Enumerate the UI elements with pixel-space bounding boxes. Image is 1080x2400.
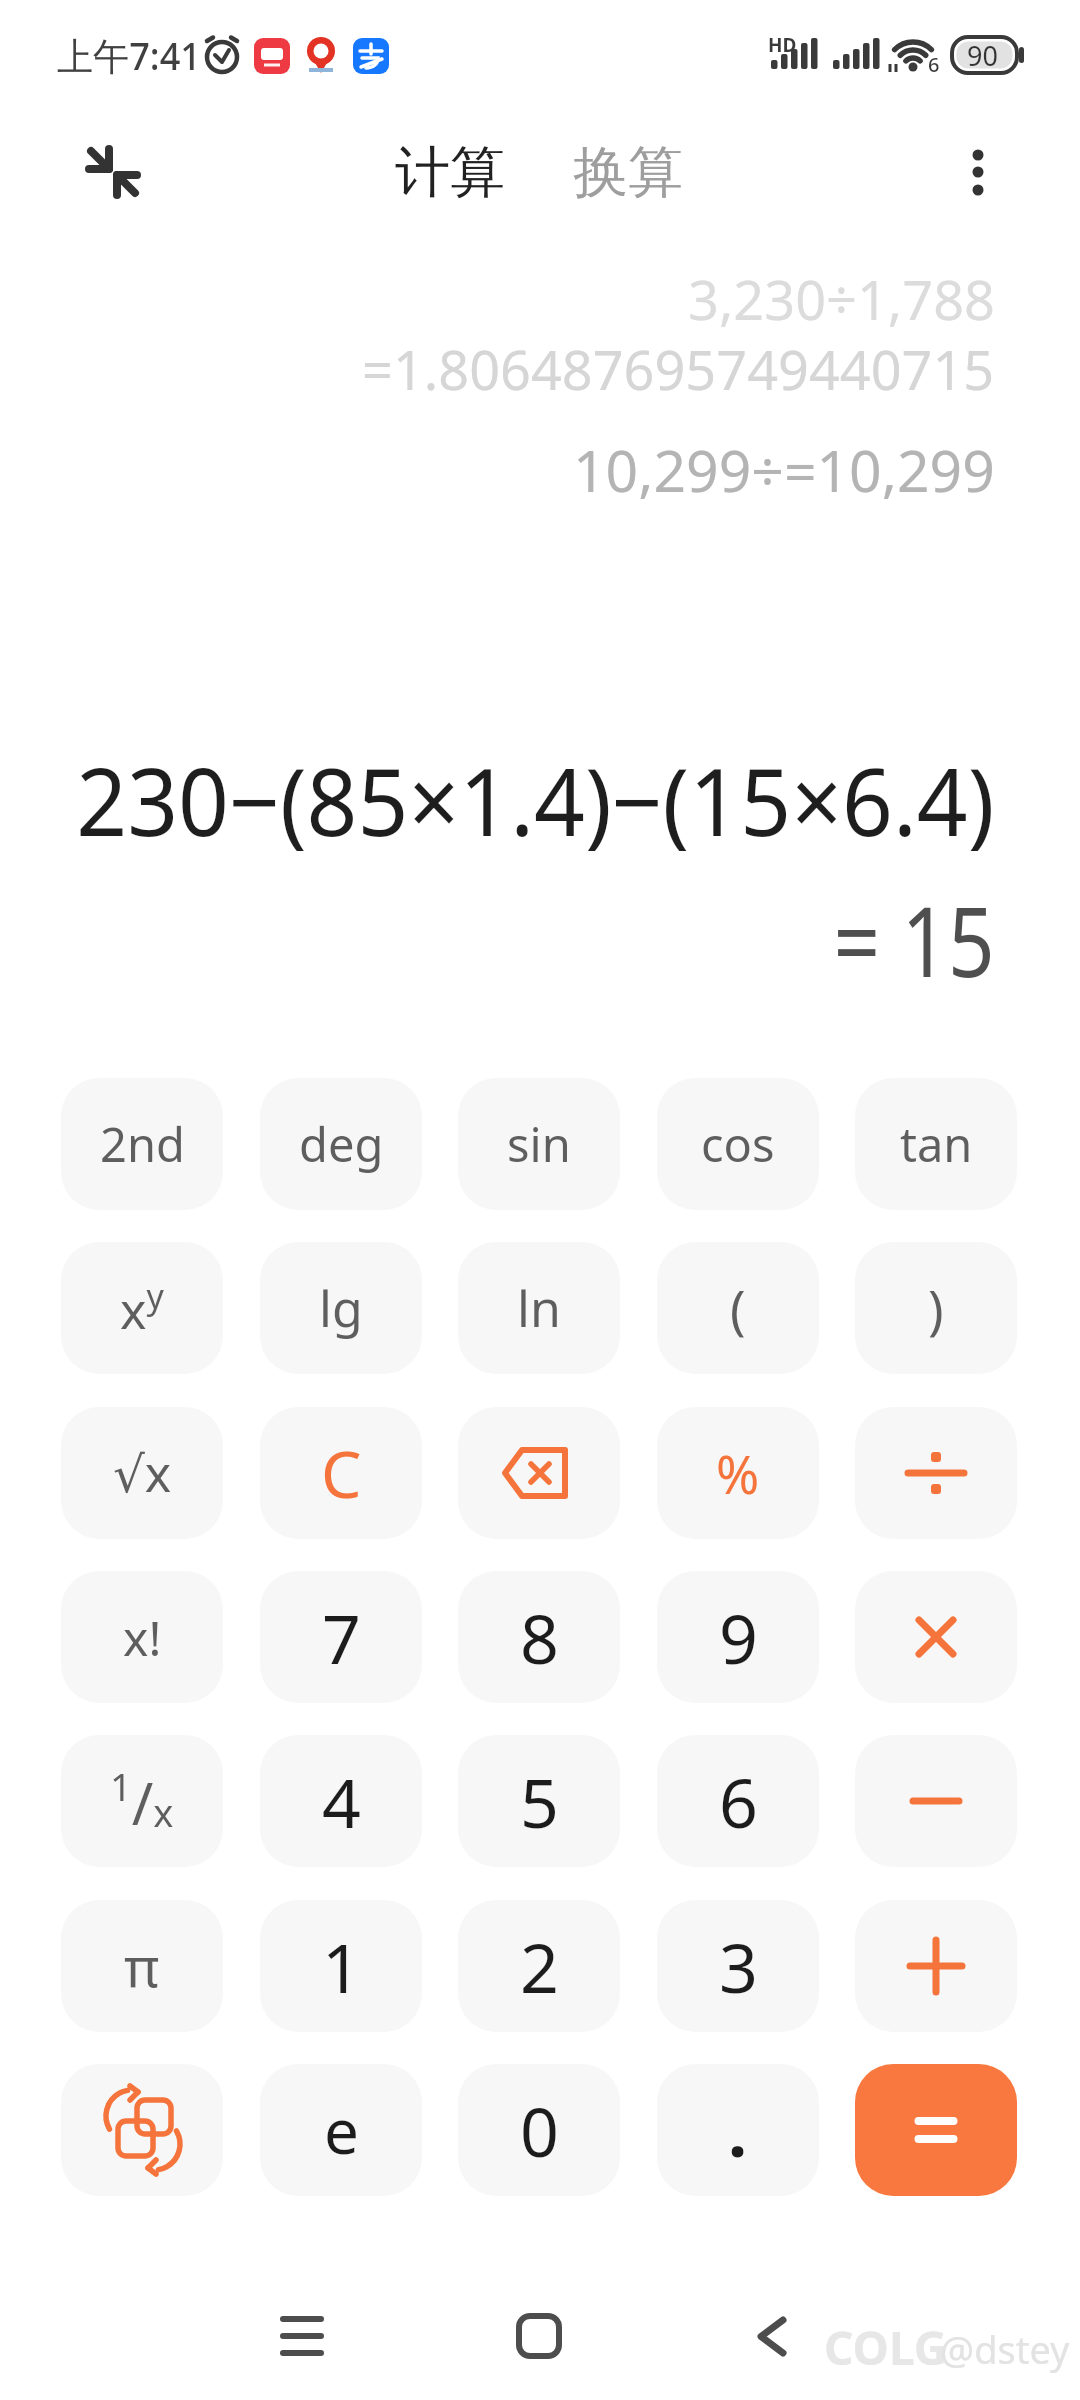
button[interactable]: 换算 [558,130,698,214]
staticText: . [728,2084,748,2177]
button[interactable]: π [61,1900,223,2032]
button[interactable]: 计算 [380,130,520,214]
button[interactable] [855,2064,1017,2196]
button[interactable]: C [260,1407,422,1539]
button[interactable]: 4 [260,1735,422,1867]
staticText: 3 [719,1920,758,2013]
button[interactable]: 3 [657,1900,819,2032]
staticText: @dstey [940,2323,1070,2375]
staticText: 8 [520,1591,559,1684]
staticText: tan [900,1112,973,1176]
staticText: sin [507,1112,571,1176]
button[interactable] [855,1735,1017,1867]
staticText: 1/x [110,1760,174,1842]
staticText: COLG [824,2316,948,2379]
button[interactable]: 1/x [61,1735,223,1867]
button[interactable] [940,130,1016,214]
staticText: e [324,2088,359,2172]
button[interactable]: 0 [458,2064,620,2196]
staticText: ln [517,1274,561,1342]
staticText: HD [768,32,797,58]
button[interactable]: tan [855,1078,1017,1210]
staticText: ( [730,1273,746,1344]
button[interactable]: 8 [458,1571,620,1703]
button[interactable]: √x [61,1407,223,1539]
button[interactable]: 2nd [61,1078,223,1210]
button[interactable] [740,2300,812,2372]
button[interactable] [458,1407,620,1539]
button[interactable]: deg [260,1078,422,1210]
button[interactable]: 1 [260,1900,422,2032]
staticText: 1 [322,1920,361,2013]
staticText: 10,299÷=10,299 [573,431,995,509]
button[interactable] [855,1900,1017,2032]
staticText: 2nd [100,1112,185,1176]
staticText: 7 [322,1591,361,1684]
staticText: ) [928,1273,944,1344]
button[interactable] [503,2300,575,2372]
staticText: 6 [719,1755,758,1848]
staticText: 230−(85×1.4)−(15×6.4) [76,737,995,864]
button[interactable]: ) [855,1242,1017,1374]
staticText: cos [701,1112,775,1176]
staticText: π [124,1929,160,2003]
staticText: 换算 [573,138,683,207]
button[interactable]: ( [657,1242,819,1374]
button[interactable]: xy [61,1242,223,1374]
button[interactable]: 9 [657,1571,819,1703]
staticText: 90 [967,37,998,74]
button[interactable]: x! [61,1571,223,1703]
staticText: 4 [322,1755,361,1848]
staticText: C [321,1430,362,1517]
button[interactable]: 5 [458,1735,620,1867]
button[interactable]: 6 [657,1735,819,1867]
button[interactable] [266,2300,338,2372]
staticText: 6 [928,51,940,78]
staticText: =1.806487695749440715 [362,332,995,406]
staticText: xy [120,1273,164,1344]
button[interactable]: 2 [458,1900,620,2032]
button[interactable]: % [657,1407,819,1539]
button[interactable]: lg [260,1242,422,1374]
button[interactable]: cos [657,1078,819,1210]
button[interactable]: sin [458,1078,620,1210]
button[interactable] [855,1407,1017,1539]
button[interactable] [61,2064,223,2196]
button[interactable]: ln [458,1242,620,1374]
staticText: 5 [520,1755,559,1848]
button[interactable]: . [657,2064,819,2196]
staticText: % [716,1438,760,1509]
button[interactable]: e [260,2064,422,2196]
staticText: 2 [520,1920,559,2013]
button[interactable] [76,136,148,208]
staticText: deg [299,1112,384,1176]
button[interactable] [855,1571,1017,1703]
staticText: √x [113,1439,172,1507]
staticText: x! [123,1605,162,1670]
staticText: lg [319,1274,363,1342]
staticText: 计算 [395,138,505,207]
staticText: 上午7:41 [57,29,201,81]
button[interactable]: 7 [260,1571,422,1703]
staticText: 9 [719,1591,758,1684]
staticText: 3,230÷1,788 [688,262,995,336]
staticText: 0 [520,2084,559,2177]
staticText: = 15 [833,874,995,1005]
